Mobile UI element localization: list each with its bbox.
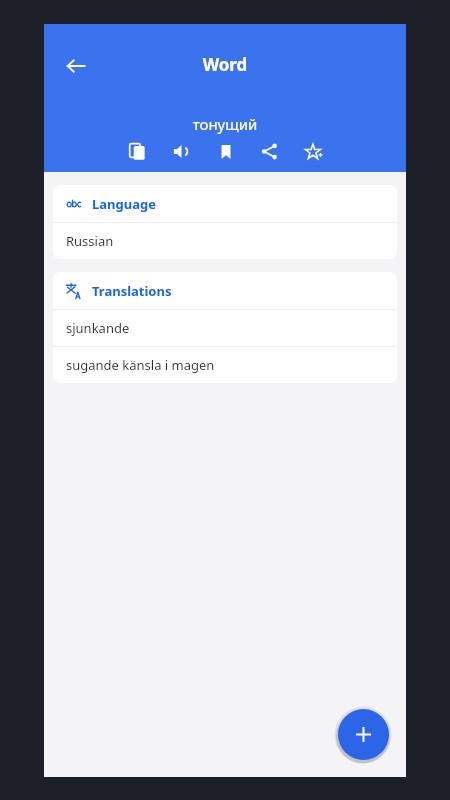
button[interactable]: Back [52, 42, 100, 90]
staticText: sjunkande [66, 319, 130, 337]
button[interactable]: Share [258, 140, 281, 163]
staticText: Language [92, 195, 156, 213]
staticText: Translations [92, 282, 172, 300]
button[interactable]: Add [338, 709, 389, 760]
staticText: Russian [66, 232, 114, 250]
button[interactable]: Language [53, 185, 397, 222]
button[interactable]: Translations [53, 272, 397, 309]
staticText: тонущий [44, 114, 406, 134]
button[interactable]: sjunkande [53, 310, 397, 346]
staticText: Word [44, 53, 406, 76]
button[interactable]: Add to favourites [302, 140, 325, 163]
staticText: sugande känsla i magen [66, 356, 215, 374]
button[interactable]: Bookmark [214, 140, 237, 163]
button[interactable]: Speak [170, 140, 193, 163]
button[interactable]: Russian [53, 223, 397, 259]
button[interactable]: sugande känsla i magen [53, 347, 397, 383]
button[interactable]: Copy [126, 140, 149, 163]
